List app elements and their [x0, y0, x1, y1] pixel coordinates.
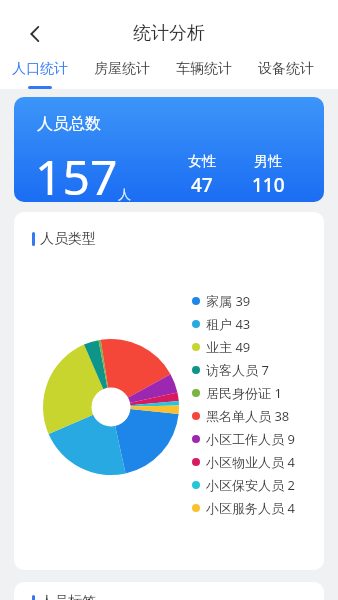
button[interactable]: 小区物业人员 4: [192, 450, 295, 473]
button[interactable]: 家属 39: [192, 289, 251, 312]
button[interactable]: 人口统计: [12, 55, 68, 89]
staticText: 110: [252, 172, 285, 198]
staticText: 人员总数: [37, 114, 101, 134]
staticText: 小区服务人员 4: [206, 499, 295, 517]
button[interactable]: [29, 26, 41, 42]
staticText: 设备统计: [258, 60, 314, 78]
staticText: 人口统计: [12, 60, 68, 78]
button[interactable]: 小区保安人员 2: [192, 473, 295, 496]
staticText: 人: [118, 186, 131, 202]
staticText: 人员标签: [40, 593, 96, 600]
staticText: 人员类型: [40, 230, 96, 248]
staticText: 小区保安人员 2: [206, 476, 295, 494]
button[interactable]: 房屋统计: [94, 55, 150, 89]
staticText: 黑名单人员 38: [206, 407, 290, 425]
staticText: 统计分析: [133, 22, 205, 45]
staticText: 女性: [188, 153, 216, 171]
button[interactable]: 租户 43: [192, 312, 251, 335]
button[interactable]: 车辆统计: [176, 55, 232, 89]
button[interactable]: 访客人员 7: [192, 358, 269, 381]
staticText: 小区工作人员 9: [206, 430, 295, 448]
staticText: 小区物业人员 4: [206, 453, 295, 471]
button[interactable]: 业主 49: [192, 335, 251, 358]
staticText: 租户 43: [206, 315, 251, 333]
button[interactable]: 居民身份证 1: [192, 381, 282, 404]
button[interactable]: 人员总数: [14, 97, 324, 202]
staticText: 房屋统计: [94, 60, 150, 78]
staticText: 访客人员 7: [206, 361, 269, 379]
staticText: 家属 39: [206, 292, 251, 310]
button[interactable]: 小区工作人员 9: [192, 427, 295, 450]
staticText: 157: [35, 144, 118, 202]
staticText: 居民身份证 1: [206, 384, 282, 402]
button[interactable]: 小区服务人员 4: [192, 496, 295, 519]
button[interactable]: 黑名单人员 38: [192, 404, 290, 427]
staticText: 车辆统计: [176, 60, 232, 78]
staticText: 47: [191, 172, 213, 198]
button[interactable]: 设备统计: [258, 55, 314, 89]
staticText: 业主 49: [206, 338, 251, 356]
staticText: 男性: [254, 153, 282, 171]
